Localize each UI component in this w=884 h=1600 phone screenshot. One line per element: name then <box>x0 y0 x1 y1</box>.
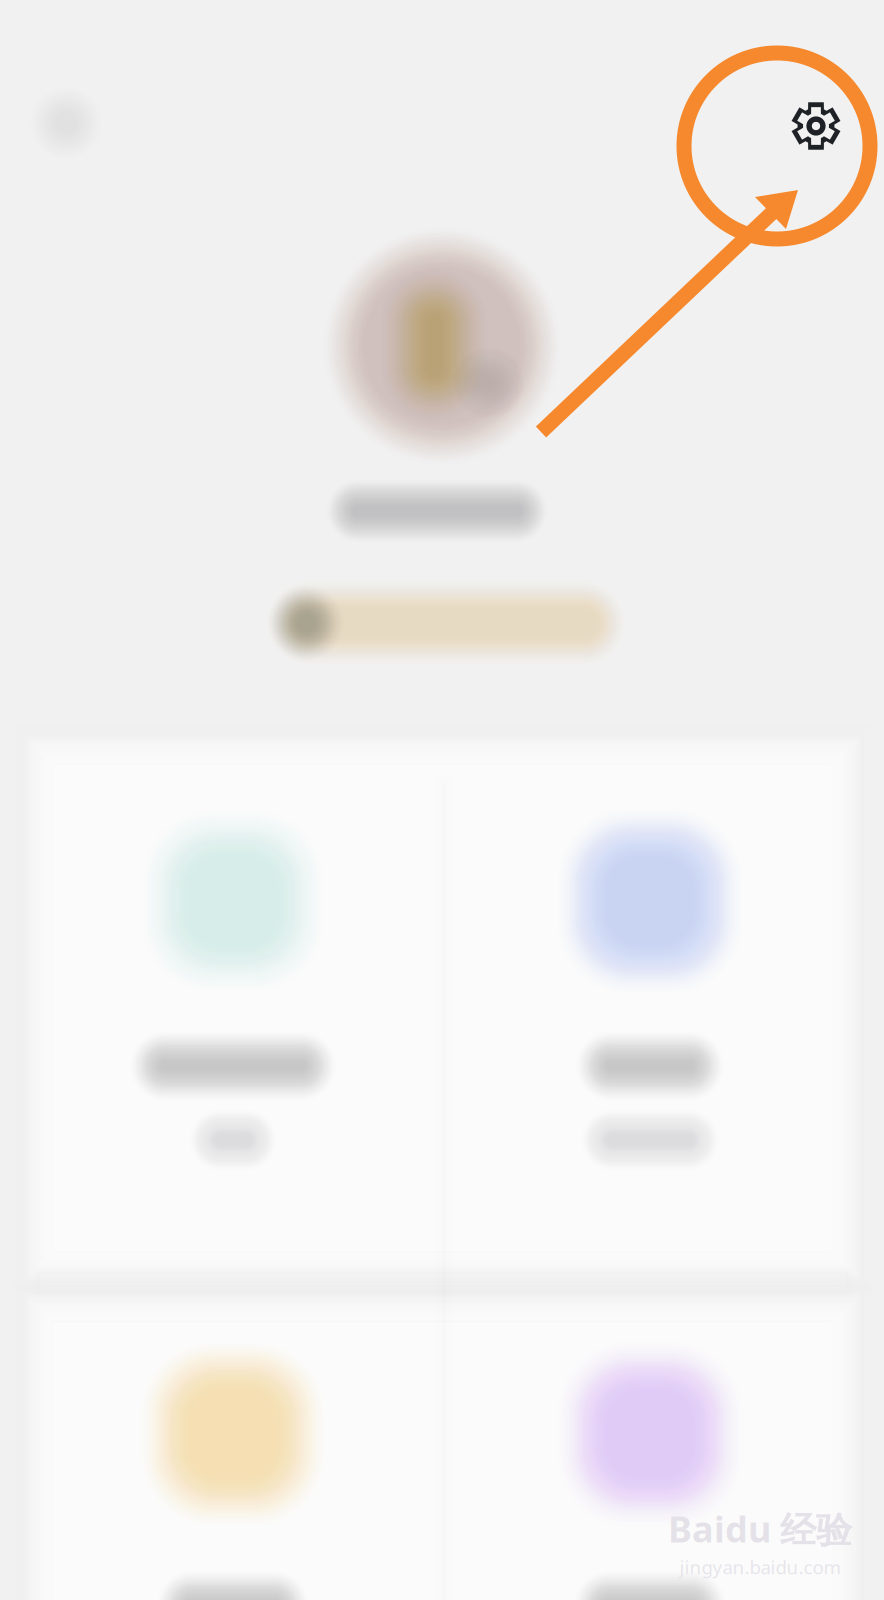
button[interactable]: Card three <box>27 1293 439 1600</box>
button[interactable]: Card one <box>27 737 439 1277</box>
button[interactable]: Settings <box>771 81 861 171</box>
button[interactable]: Card four <box>444 1293 856 1600</box>
button[interactable]: Membership <box>242 563 642 683</box>
staticText: Baidu 经验 <box>668 1505 852 1553</box>
button[interactable]: Card two <box>444 737 856 1277</box>
staticText: jingyan.baidu.com <box>679 1555 840 1579</box>
button[interactable]: Back <box>6 63 126 183</box>
